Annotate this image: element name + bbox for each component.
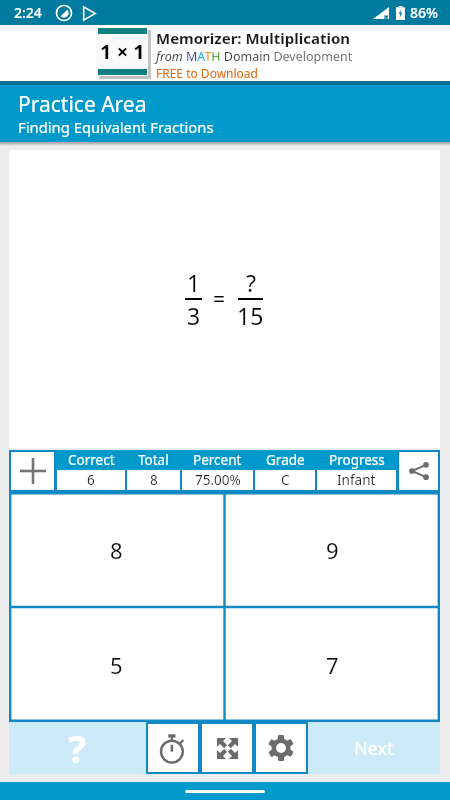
staticText: Infant	[337, 471, 376, 489]
staticText: 7	[326, 650, 339, 680]
staticText: 6	[87, 471, 95, 489]
button[interactable]: Share	[397, 450, 440, 492]
staticText: ?	[68, 722, 87, 774]
staticText: Percent	[193, 451, 242, 469]
button[interactable]: 7	[224, 607, 440, 722]
staticText: Next	[354, 736, 394, 761]
staticText: from MATH Domain Development	[156, 48, 353, 65]
button[interactable]: Settings	[254, 722, 308, 774]
staticText: 75.00%	[195, 471, 241, 489]
staticText: 86%	[410, 3, 438, 22]
button[interactable]: 1 × 1	[0, 25, 450, 81]
staticText: Practice Area	[18, 90, 147, 119]
staticText: Total	[138, 451, 169, 469]
button[interactable]: 5	[9, 607, 224, 722]
button[interactable]: Next	[308, 722, 440, 774]
staticText: 3	[187, 300, 201, 331]
staticText: 1	[187, 267, 201, 298]
staticText: 8	[150, 471, 158, 489]
staticText: Grade	[266, 451, 305, 469]
staticText: 8	[110, 535, 123, 565]
staticText: 5	[110, 650, 123, 680]
staticText: 1 × 1	[100, 38, 145, 65]
staticText: ?	[246, 267, 256, 298]
button[interactable]: Fullscreen	[200, 722, 254, 774]
staticText: 9	[326, 535, 339, 565]
staticText: =	[213, 285, 226, 314]
staticText: Correct	[68, 451, 115, 469]
staticText: Finding Equivalent Fractions	[18, 117, 214, 137]
button[interactable]: Add	[9, 450, 56, 492]
staticText: 2:24	[14, 3, 42, 22]
staticText: FREE to Download	[156, 65, 258, 81]
button[interactable]: 8	[9, 492, 224, 607]
staticText: Memorizer: Multiplication	[156, 28, 351, 48]
button[interactable]: Timer	[146, 722, 200, 774]
staticText: Progress	[329, 451, 385, 469]
staticText: 15	[237, 300, 264, 331]
staticText: C	[281, 471, 290, 489]
button[interactable]: 9	[224, 492, 440, 607]
button[interactable]: ?	[9, 722, 146, 774]
